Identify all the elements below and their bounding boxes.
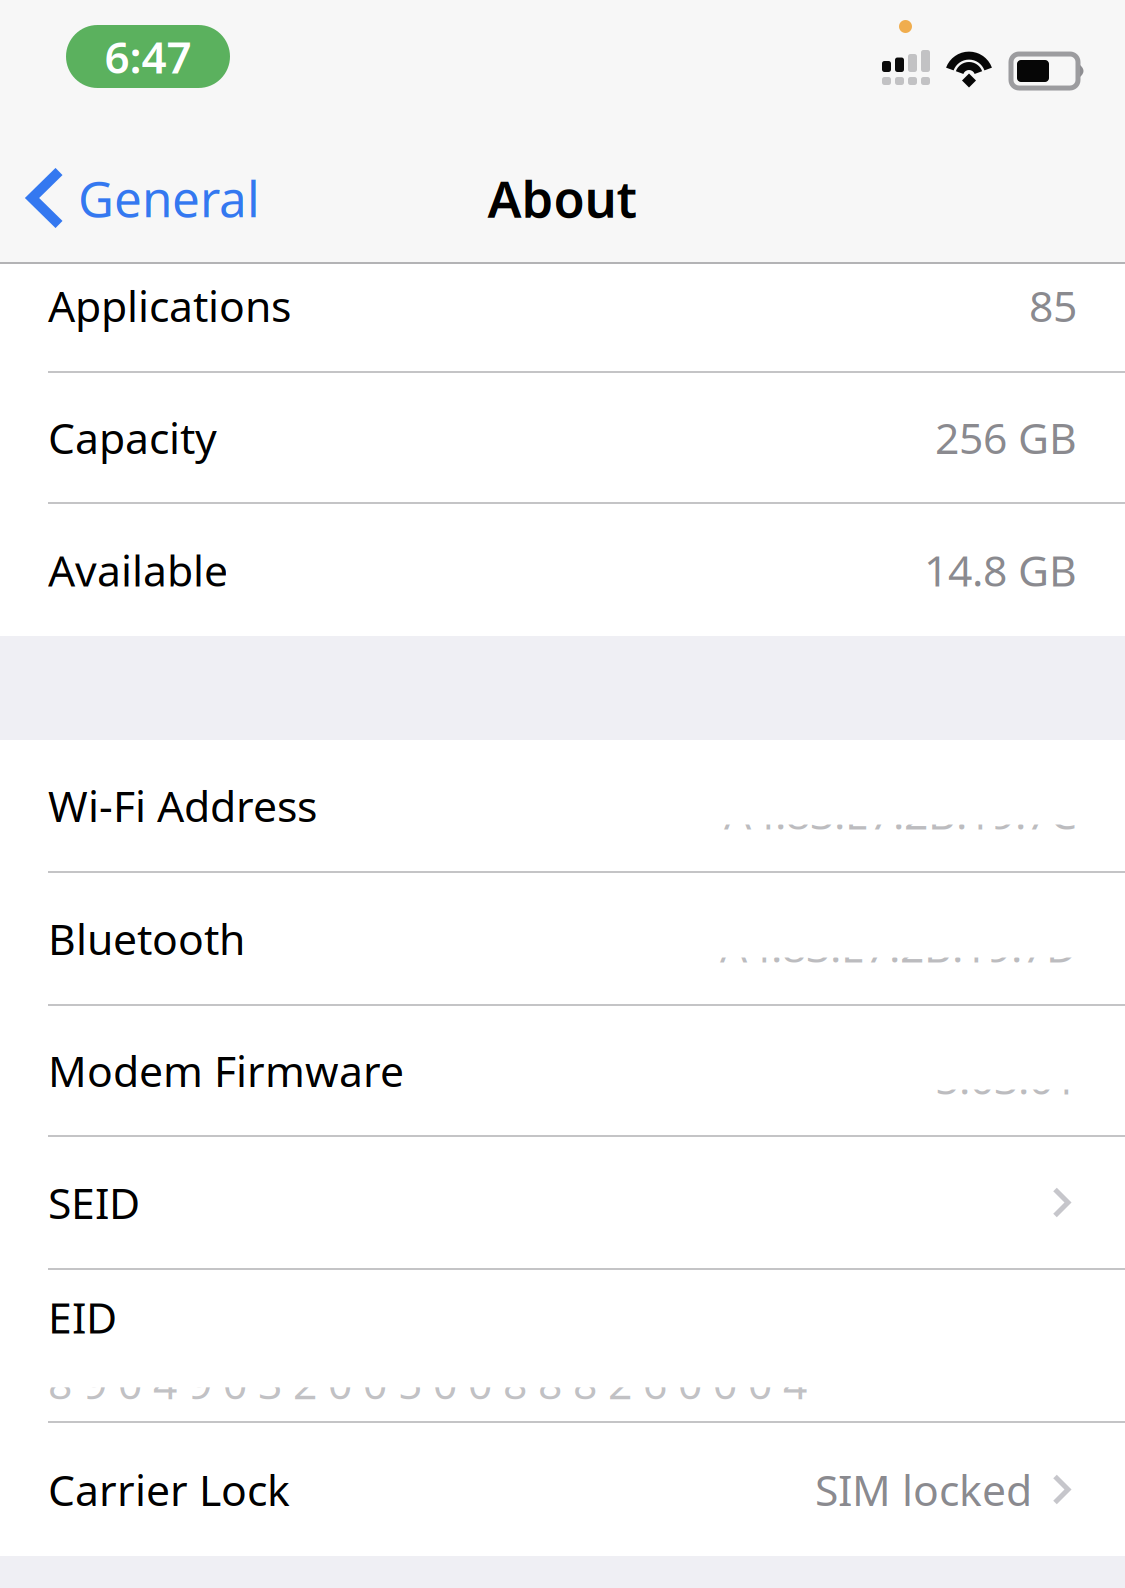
- staticText: General: [78, 165, 260, 231]
- button[interactable]: Wi-Fi Address: [0, 740, 1125, 873]
- button[interactable]: Bluetooth: [0, 873, 1125, 1006]
- staticText: SEID: [48, 1174, 140, 1231]
- button[interactable]: Capacity: [0, 373, 1125, 504]
- staticText: Applications: [48, 277, 291, 334]
- staticText: 5.03.01: [935, 1049, 1077, 1106]
- staticText: Capacity: [48, 409, 217, 466]
- button[interactable]: EID: [0, 1270, 1125, 1423]
- staticText: EID: [48, 1289, 117, 1345]
- staticText: Wi-Fi Address: [48, 777, 317, 834]
- button[interactable]: SEID: [0, 1137, 1125, 1270]
- staticText: Bluetooth: [48, 910, 245, 967]
- staticText: 85: [1029, 277, 1077, 334]
- staticText: Carrier Lock: [48, 1461, 290, 1518]
- staticText: A4:83:E7:2B:19:7D: [720, 917, 1077, 974]
- button[interactable]: Carrier Lock: [0, 1423, 1125, 1556]
- button[interactable]: Available: [0, 504, 1125, 636]
- staticText: Available: [48, 542, 228, 598]
- staticText: SIM locked: [815, 1461, 1032, 1518]
- staticText: 14.8 GB: [924, 542, 1077, 598]
- staticText: A4:83:E7:2B:19:7C: [724, 784, 1077, 841]
- button[interactable]: General: [0, 133, 280, 263]
- staticText: Modem Firmware: [48, 1042, 404, 1099]
- button[interactable]: Applications: [0, 264, 1125, 373]
- staticText: 256 GB: [935, 409, 1077, 466]
- button[interactable]: Modem Firmware: [0, 1006, 1125, 1137]
- staticText: 8 9 0 4 9 0 3 2 0 0 5 0 0 8 8 8 2 6 0 0 …: [48, 1354, 807, 1468]
- staticText: 6:47: [104, 27, 191, 86]
- staticText: About: [487, 164, 637, 232]
